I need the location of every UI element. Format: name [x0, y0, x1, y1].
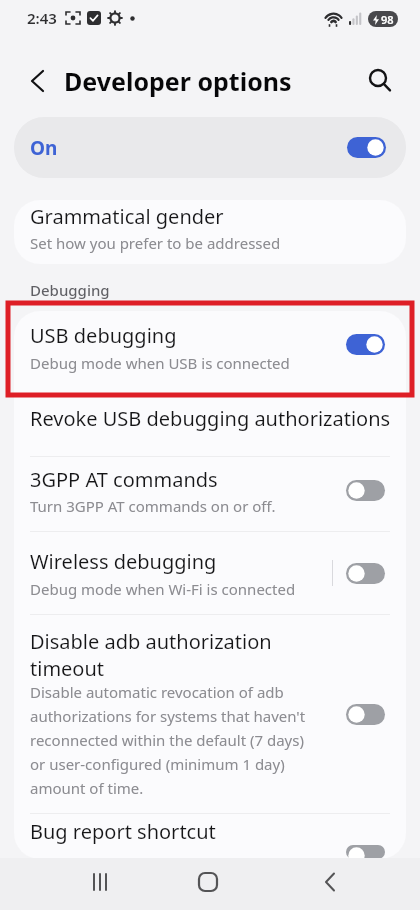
- button[interactable]: Bug report shortcut: [14, 814, 406, 859]
- button[interactable]: Revoke USB debugging authorizations: [14, 397, 406, 456]
- button[interactable]: [18, 61, 58, 101]
- button[interactable]: USB debugging: [14, 311, 406, 397]
- staticText: On: [30, 135, 58, 161]
- button[interactable]: 3GPP AT commands: [14, 457, 406, 531]
- staticText: Debug mode when Wi-Fi is connected: [30, 579, 296, 599]
- button[interactable]: Wireless debugging: [14, 532, 406, 614]
- button[interactable]: [280, 858, 420, 910]
- staticText: Disable automatic revocation of adb auth…: [30, 682, 306, 798]
- button[interactable]: On: [14, 117, 406, 178]
- staticText: 98: [381, 12, 394, 27]
- button[interactable]: Grammatical gender: [14, 200, 406, 264]
- staticText: 2:43: [27, 8, 57, 28]
- button[interactable]: [358, 59, 402, 103]
- button[interactable]: Disable adb authorization timeout: [14, 615, 406, 813]
- button[interactable]: [0, 858, 140, 910]
- staticText: Disable adb authorization timeout: [30, 628, 272, 682]
- staticText: 3GPP AT commands: [30, 466, 218, 493]
- staticText: Bug report shortcut: [30, 818, 216, 845]
- staticText: Debug mode when USB is connected: [30, 353, 290, 373]
- staticText: Wireless debugging: [30, 548, 217, 575]
- staticText: Developer options: [64, 64, 292, 98]
- staticText: Turn 3GPP AT commands on or off.: [30, 496, 276, 516]
- staticText: Set how you prefer to be addressed: [30, 233, 281, 253]
- staticText: Grammatical gender: [30, 203, 224, 230]
- staticText: USB debugging: [30, 322, 177, 349]
- staticText: Revoke USB debugging authorizations: [30, 405, 391, 432]
- staticText: Debugging: [30, 280, 110, 300]
- button[interactable]: [140, 858, 280, 910]
